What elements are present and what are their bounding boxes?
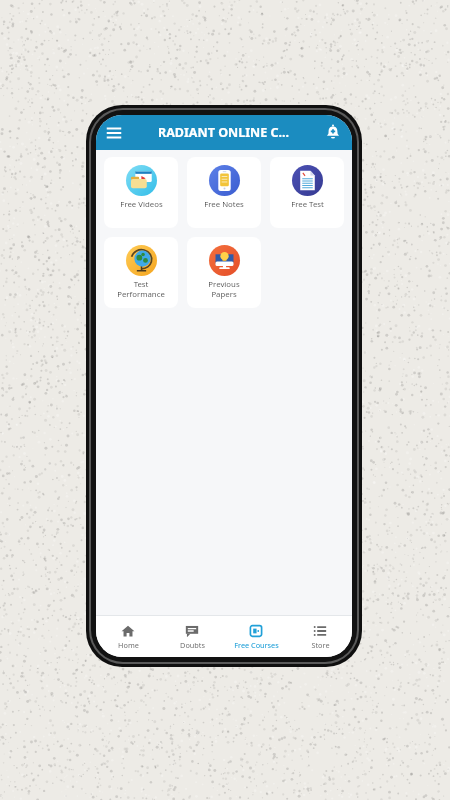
staticText: Home (118, 640, 139, 650)
button[interactable]: Test Performance (104, 237, 178, 308)
staticText: RADIANT ONLINE C... (158, 124, 290, 141)
button[interactable]: Free Notes (187, 157, 261, 228)
staticText: Store (311, 640, 330, 650)
staticText: Free Notes (204, 199, 244, 210)
staticText: Free Courses (234, 640, 279, 650)
button[interactable]: Free Videos (104, 157, 178, 228)
button[interactable]: Previous Papers (187, 237, 261, 308)
staticText: Doubts (180, 640, 205, 650)
button[interactable]: Doubts (160, 616, 224, 657)
button[interactable]: Store (288, 616, 352, 657)
staticText: Free Test (291, 199, 324, 210)
button[interactable]: Free Test (270, 157, 344, 228)
button[interactable]: Notifications (323, 123, 343, 143)
staticText: Free Videos (120, 199, 163, 210)
button[interactable]: Open navigation menu (103, 122, 125, 144)
button[interactable]: Home (96, 616, 160, 657)
button[interactable]: Free Courses (224, 616, 288, 657)
staticText: Test Performance (117, 279, 165, 299)
staticText: Previous Papers (208, 279, 240, 299)
